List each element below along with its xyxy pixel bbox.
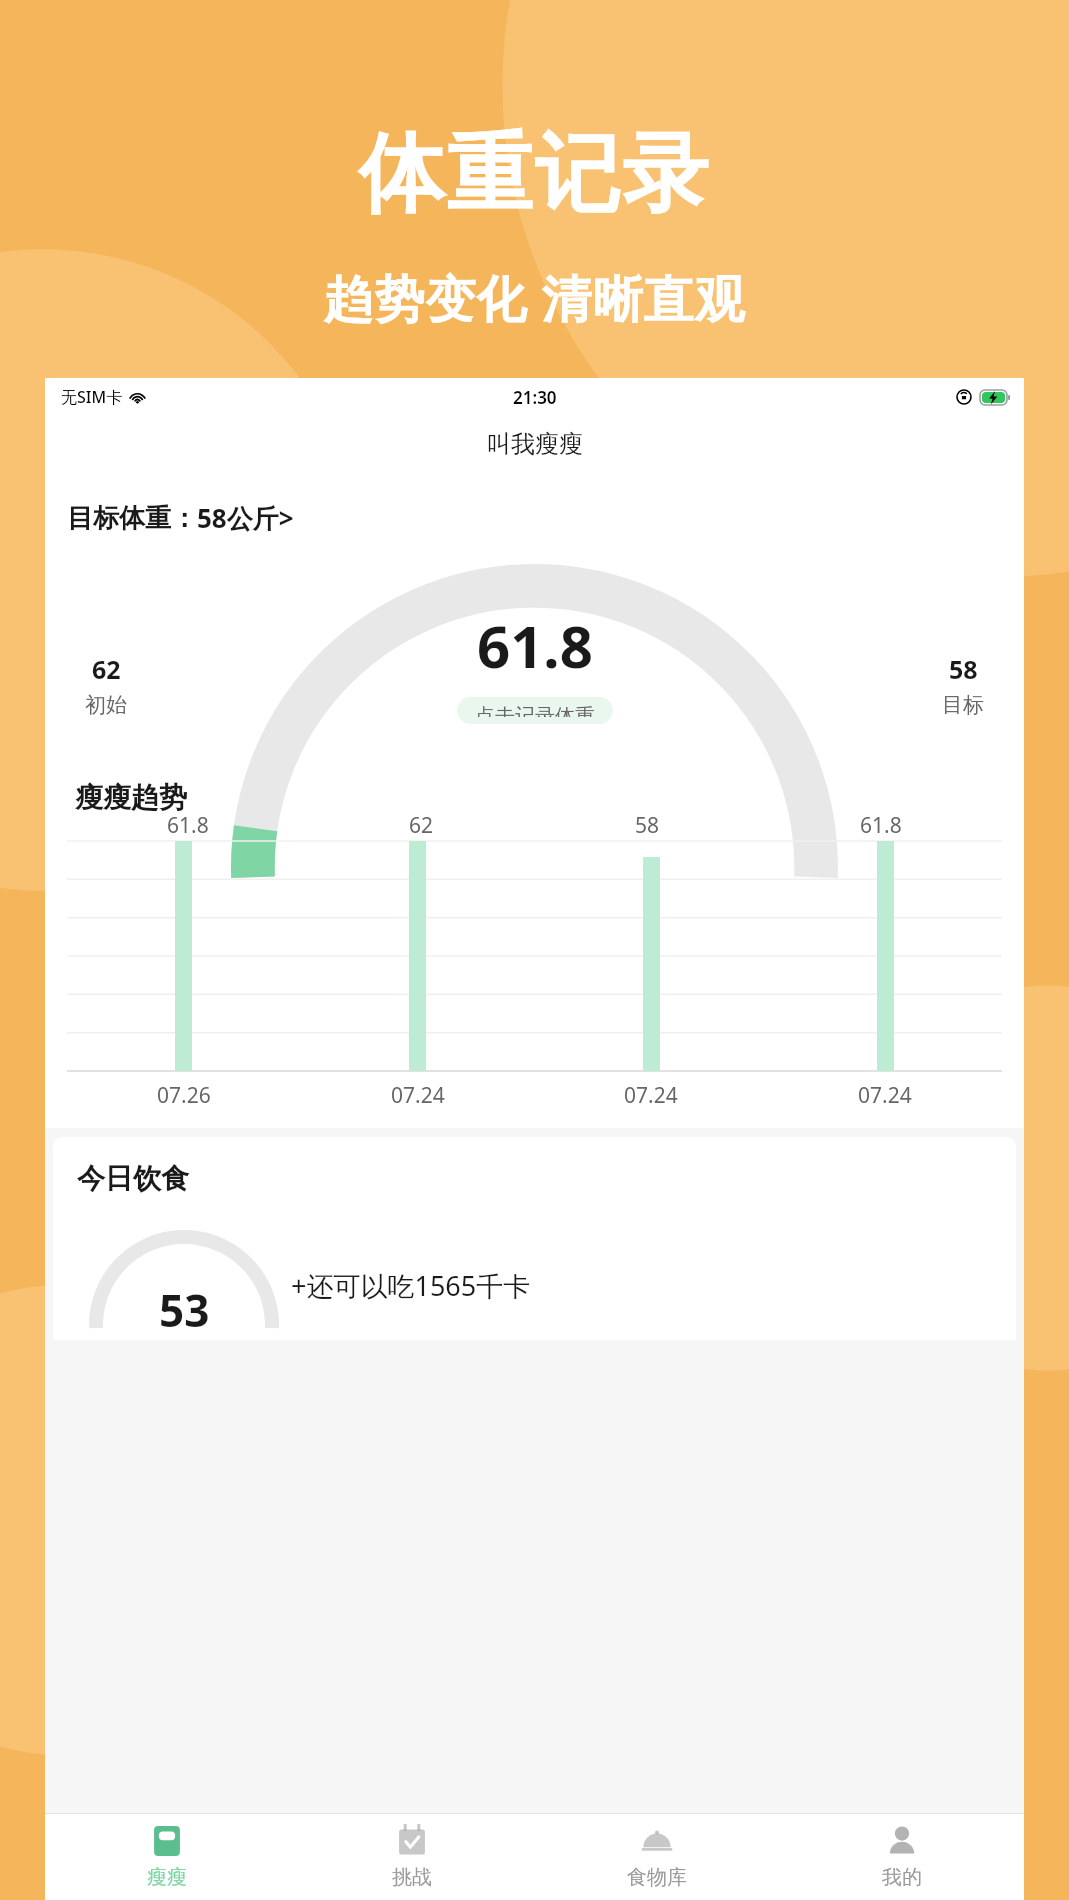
staticText: 今日饮食 [77, 1161, 189, 1196]
staticText: 目标 [942, 692, 984, 718]
staticText: 点击记录体重 [475, 704, 595, 717]
button[interactable]: 目标体重： [45, 494, 1024, 542]
staticText: 食物库 [627, 1865, 687, 1890]
staticText: 瘦瘦 [147, 1865, 187, 1890]
staticText: 07.24 [624, 1081, 678, 1110]
staticText: 挑战 [392, 1865, 432, 1890]
staticText: +还可以吃1565千卡 [291, 1267, 531, 1304]
other: 我的 [885, 1824, 919, 1858]
staticText: 58 [949, 652, 978, 686]
button[interactable]: 挑战 [289, 1814, 534, 1900]
staticText: 趋势变化 清晰直观 [0, 264, 1069, 332]
other: 挑战 [395, 1824, 429, 1858]
button[interactable]: 我的 [779, 1814, 1024, 1900]
staticText: 58公斤> [197, 500, 294, 536]
staticText: 61.8 [860, 811, 902, 840]
staticText: 53 [159, 1280, 210, 1340]
staticText: 无SIM卡 [61, 386, 123, 408]
staticText: 62 [409, 811, 434, 840]
staticText: 61.8 [477, 606, 593, 685]
staticText: 62 [92, 652, 121, 686]
button[interactable]: 瘦瘦 [45, 1814, 289, 1900]
button[interactable]: 点击记录体重 [457, 697, 613, 724]
staticText: 初始 [85, 692, 127, 718]
staticText: 21:30 [513, 386, 557, 409]
staticText: 07.24 [391, 1081, 445, 1110]
other: 瘦瘦 [150, 1824, 184, 1858]
staticText: 目标体重： [67, 502, 197, 535]
staticText: 61.8 [167, 811, 209, 840]
staticText: 07.26 [157, 1081, 211, 1110]
button[interactable]: 食物库 [534, 1814, 779, 1900]
staticText: 07.24 [858, 1081, 912, 1110]
other: 食物库 [640, 1824, 674, 1858]
staticText: 叫我瘦瘦 [487, 429, 583, 459]
staticText: 58 [635, 811, 660, 840]
staticText: 体重记录 [0, 120, 1069, 228]
staticText: 我的 [882, 1865, 922, 1890]
staticText: 瘦瘦趋势 [75, 780, 187, 815]
